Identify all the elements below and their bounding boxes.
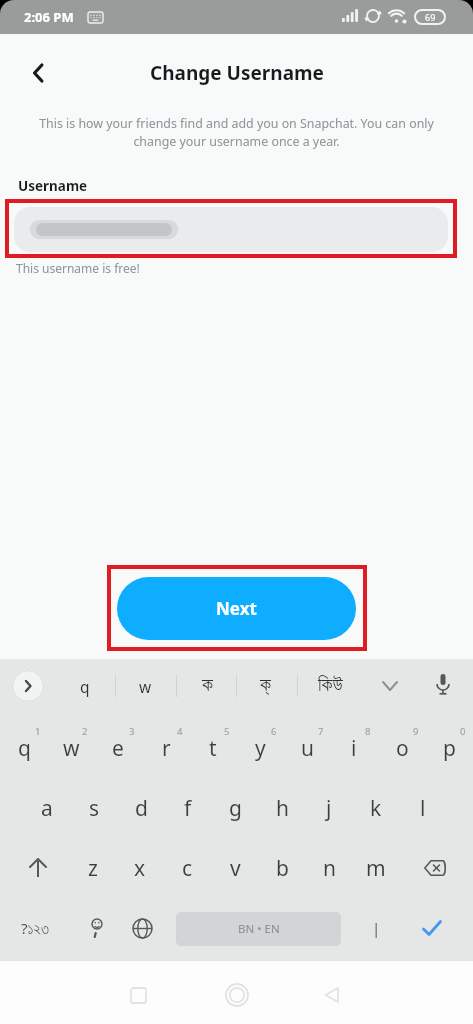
staticText: 69 bbox=[425, 11, 436, 23]
button[interactable]: z bbox=[71, 848, 115, 888]
staticText: n bbox=[323, 854, 336, 883]
button[interactable]: m bbox=[354, 848, 398, 888]
button[interactable]: t bbox=[191, 728, 235, 768]
staticText: Username bbox=[18, 177, 88, 195]
button[interactable]: a bbox=[25, 788, 69, 828]
button[interactable]: k bbox=[354, 788, 398, 828]
staticText: 2:06 PM bbox=[24, 8, 74, 26]
button[interactable]: w bbox=[49, 728, 93, 768]
button[interactable]: i bbox=[332, 728, 376, 768]
button[interactable]: r bbox=[144, 728, 188, 768]
button[interactable] bbox=[124, 910, 160, 946]
staticText: e bbox=[112, 734, 124, 763]
staticText: Next bbox=[216, 597, 257, 620]
button[interactable]: u bbox=[285, 728, 329, 768]
button[interactable]: j bbox=[307, 788, 351, 828]
staticText: v bbox=[230, 854, 241, 883]
button[interactable]: q bbox=[2, 728, 46, 768]
staticText: j bbox=[326, 794, 332, 823]
button[interactable]: n bbox=[307, 848, 351, 888]
staticText: 7 bbox=[318, 725, 324, 738]
button[interactable]: d bbox=[119, 788, 163, 828]
button[interactable]: x bbox=[118, 848, 162, 888]
button[interactable]: s bbox=[72, 788, 116, 828]
button[interactable]: f bbox=[166, 788, 210, 828]
staticText: x bbox=[134, 854, 146, 883]
button[interactable]: b bbox=[260, 848, 304, 888]
button[interactable]: e bbox=[96, 728, 140, 768]
button[interactable] bbox=[12, 670, 44, 702]
staticText: f bbox=[184, 794, 192, 823]
staticText: b bbox=[276, 854, 289, 883]
staticText: 5 bbox=[224, 725, 230, 738]
button[interactable]: p bbox=[427, 728, 471, 768]
button[interactable] bbox=[122, 979, 154, 1011]
staticText: q bbox=[80, 676, 90, 697]
staticText: ক bbox=[202, 676, 213, 695]
staticText: w bbox=[63, 734, 80, 763]
staticText: p bbox=[443, 734, 456, 763]
button[interactable] bbox=[417, 850, 453, 886]
button[interactable]: y bbox=[238, 728, 282, 768]
button[interactable]: q bbox=[55, 669, 115, 703]
button[interactable]: কিউ bbox=[300, 668, 360, 702]
button[interactable] bbox=[78, 910, 114, 946]
staticText: ?১২৩ bbox=[21, 918, 49, 938]
button[interactable]: c bbox=[165, 848, 209, 888]
staticText: c bbox=[182, 854, 193, 883]
button[interactable] bbox=[24, 58, 54, 88]
staticText: কিউ bbox=[318, 676, 343, 695]
staticText: d bbox=[135, 794, 148, 823]
button[interactable] bbox=[315, 979, 347, 1011]
button[interactable]: l bbox=[401, 788, 445, 828]
button[interactable] bbox=[414, 910, 450, 946]
staticText: u bbox=[301, 734, 314, 763]
staticText: s bbox=[89, 794, 100, 823]
staticText: | bbox=[372, 918, 381, 938]
staticText: a bbox=[41, 794, 53, 823]
staticText: 2 bbox=[82, 725, 88, 738]
staticText: h bbox=[276, 794, 289, 823]
button[interactable]: ?১২৩ bbox=[8, 910, 62, 946]
button[interactable]: Next bbox=[117, 577, 356, 640]
staticText: k bbox=[370, 794, 382, 823]
staticText: z bbox=[88, 854, 98, 883]
staticText: 9 bbox=[413, 725, 419, 738]
staticText: i bbox=[351, 734, 357, 763]
button[interactable]: | bbox=[356, 910, 396, 946]
button[interactable]: ক্ bbox=[235, 668, 295, 702]
staticText: 6 bbox=[271, 725, 277, 738]
button[interactable]: o bbox=[380, 728, 424, 768]
button[interactable]: g bbox=[213, 788, 257, 828]
staticText: 1 bbox=[35, 725, 41, 738]
staticText: This is how your friends find and add yo… bbox=[22, 115, 451, 149]
staticText: o bbox=[396, 734, 409, 763]
button[interactable]: h bbox=[260, 788, 304, 828]
staticText: Change Username bbox=[150, 60, 324, 86]
staticText: This username is free! bbox=[16, 260, 140, 276]
staticText: 0 bbox=[460, 725, 466, 738]
button[interactable]: w bbox=[115, 669, 175, 703]
staticText: w bbox=[139, 676, 152, 697]
staticText: m bbox=[366, 854, 386, 883]
button[interactable] bbox=[20, 850, 56, 886]
staticText: g bbox=[229, 794, 242, 823]
button[interactable]: v bbox=[213, 848, 257, 888]
staticText: ক্ bbox=[260, 676, 271, 695]
button[interactable] bbox=[14, 207, 448, 252]
button[interactable]: BN • EN bbox=[176, 912, 341, 946]
button[interactable]: ক bbox=[177, 668, 237, 702]
staticText: y bbox=[255, 734, 266, 763]
staticText: BN • EN bbox=[238, 921, 280, 937]
staticText: 8 bbox=[365, 725, 371, 738]
staticText: 3 bbox=[129, 725, 135, 738]
staticText: t bbox=[209, 734, 217, 763]
staticText: 4 bbox=[177, 725, 183, 738]
staticText: r bbox=[162, 734, 171, 763]
staticText: l bbox=[420, 794, 426, 823]
button[interactable] bbox=[221, 979, 253, 1011]
staticText: q bbox=[18, 734, 31, 763]
